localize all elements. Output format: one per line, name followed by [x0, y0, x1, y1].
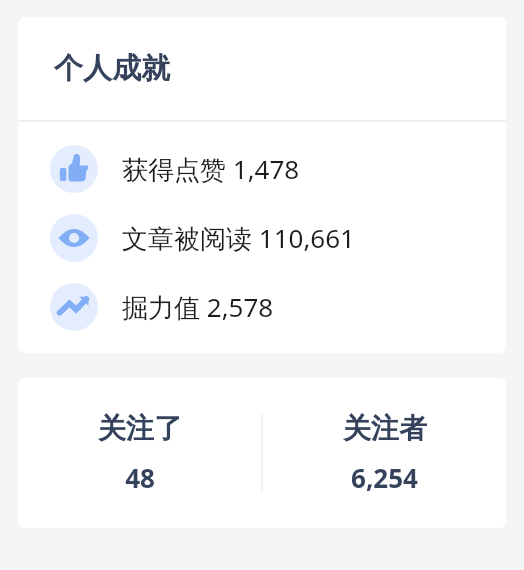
- staticText: 关注者: [343, 411, 427, 446]
- staticText: 掘力值 2,578: [122, 289, 274, 325]
- button[interactable]: Power value: [18, 272, 506, 341]
- button[interactable]: 关注了: [18, 411, 261, 495]
- other: Views: [50, 214, 98, 262]
- staticText: 48: [125, 460, 155, 495]
- button[interactable]: 关注者: [263, 411, 506, 495]
- staticText: 个人成就: [54, 50, 170, 87]
- button[interactable]: Likes: [18, 134, 506, 203]
- staticText: 关注了: [98, 411, 182, 446]
- other: Likes: [50, 145, 98, 193]
- button[interactable]: Views: [18, 203, 506, 272]
- other: Power value: [50, 283, 98, 331]
- button[interactable]: 个人成就: [18, 17, 506, 120]
- staticText: 6,254: [351, 460, 418, 495]
- staticText: 文章被阅读 110,661: [122, 220, 355, 256]
- staticText: 获得点赞 1,478: [122, 151, 300, 187]
